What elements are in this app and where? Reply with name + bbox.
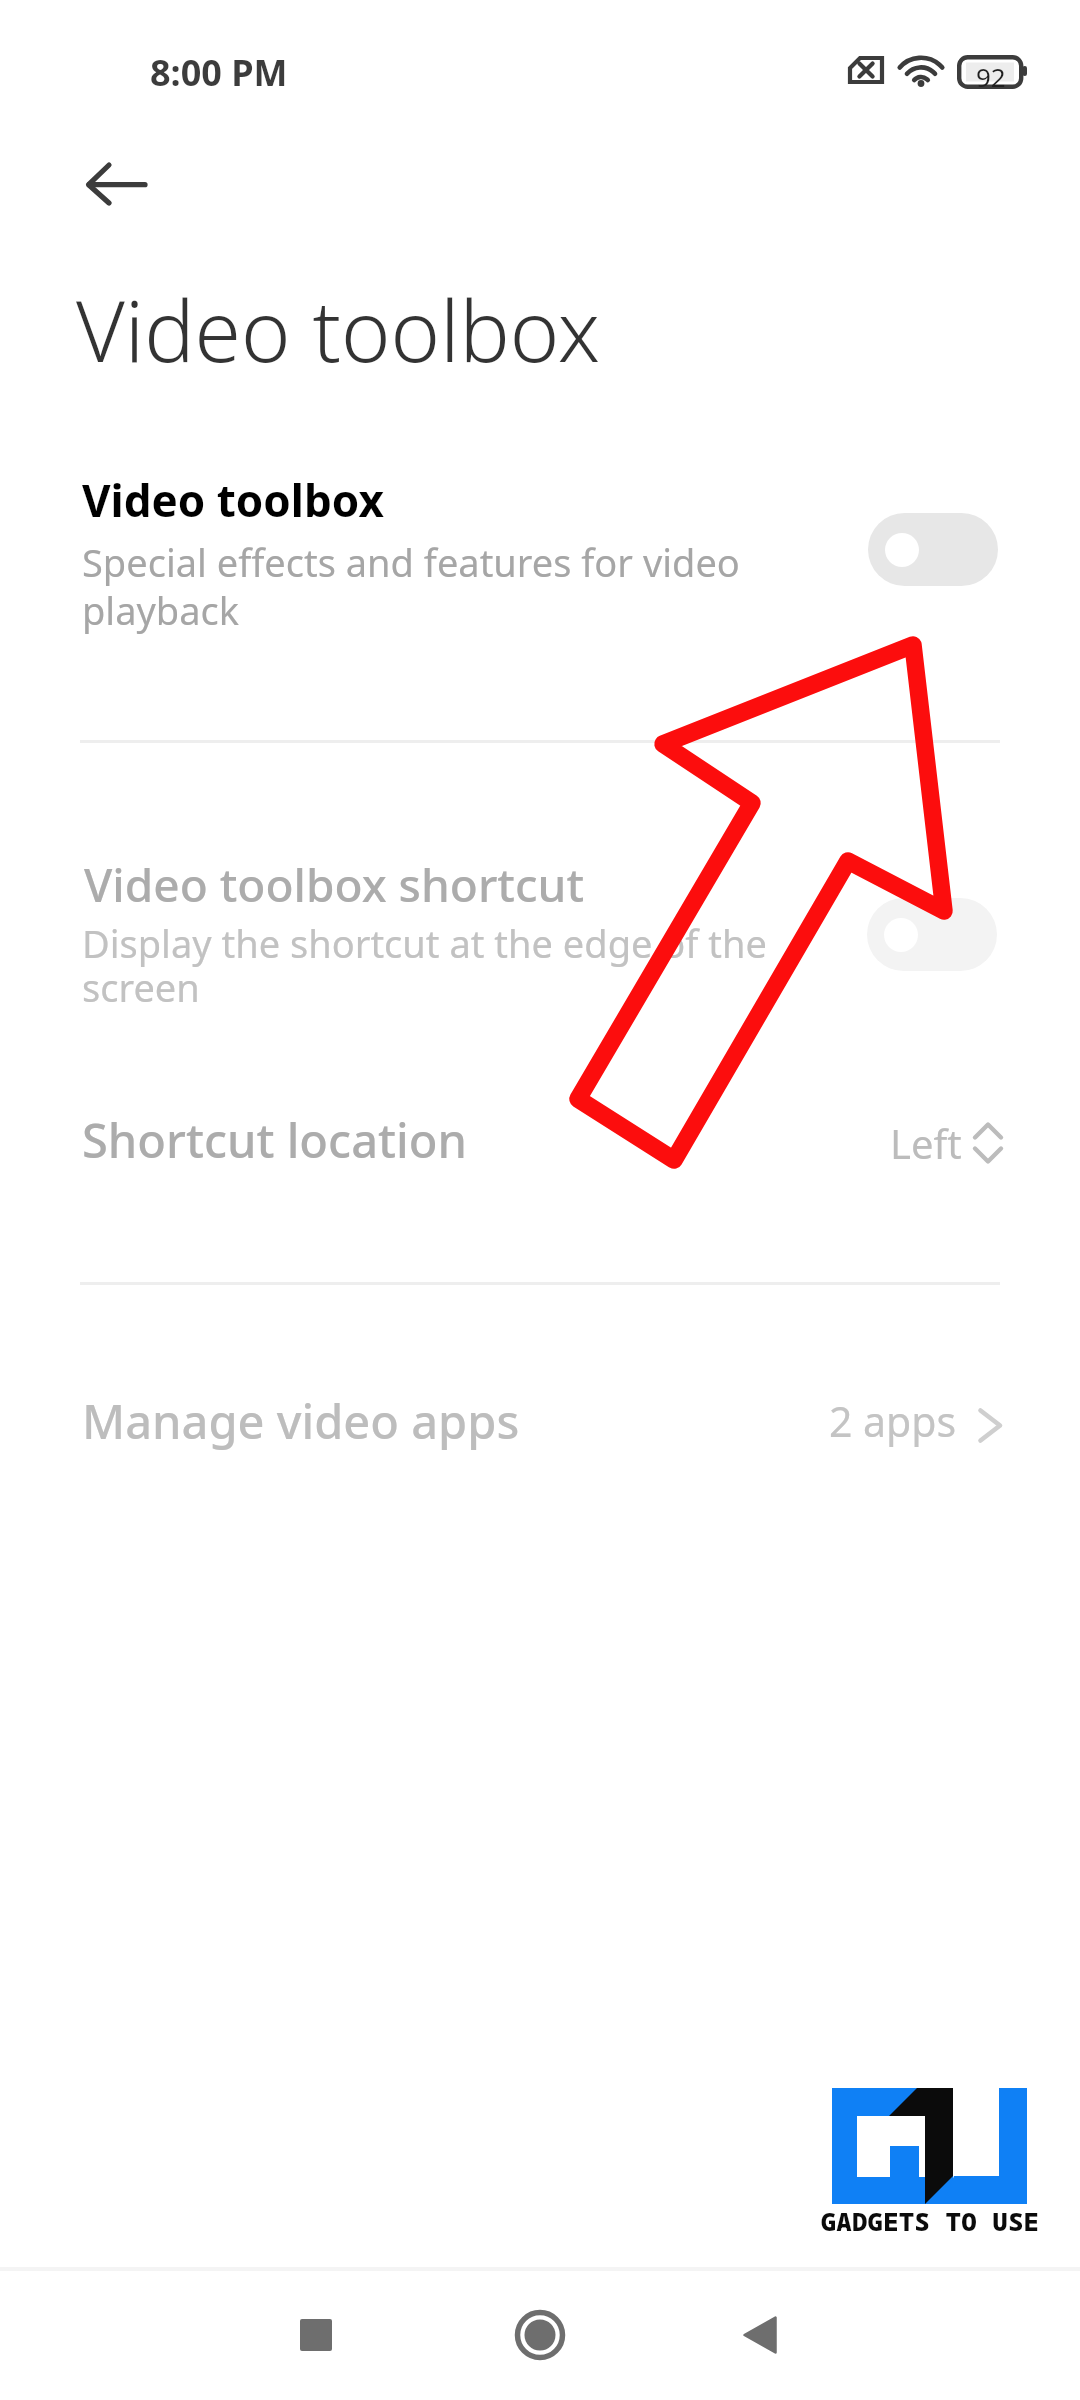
staticText: 92	[976, 59, 1006, 94]
button[interactable]: Toggle switch	[867, 898, 997, 971]
button[interactable]: Back	[62, 130, 172, 240]
staticText: Shortcut location	[82, 1108, 467, 1172]
button[interactable]: Shortcut location	[0, 1095, 1080, 1225]
button[interactable]: Recent apps	[256, 2275, 376, 2395]
button[interactable]: Manage video apps	[0, 1370, 1080, 1500]
staticText: Left	[890, 1116, 962, 1170]
staticText: Video toolbox	[76, 272, 601, 386]
button[interactable]: Video toolbox	[0, 455, 1080, 685]
button[interactable]: Home	[480, 2275, 600, 2395]
staticText: 2 apps	[829, 1393, 957, 1449]
staticText: Video toolbox	[82, 470, 384, 530]
staticText: Display the shortcut at the edge of the …	[82, 917, 782, 1013]
staticText: 8:00 PM	[150, 48, 288, 97]
staticText: Video toolbox shortcut	[84, 853, 585, 916]
staticText: GADGETS TO USE	[821, 2204, 1040, 2238]
staticText: Manage video apps	[82, 1389, 520, 1453]
button[interactable]: Toggle switch	[868, 513, 998, 586]
button[interactable]: Back	[700, 2275, 820, 2395]
staticText: Special effects and features for video p…	[82, 536, 782, 636]
button[interactable]: Video toolbox shortcut	[0, 845, 1080, 1065]
